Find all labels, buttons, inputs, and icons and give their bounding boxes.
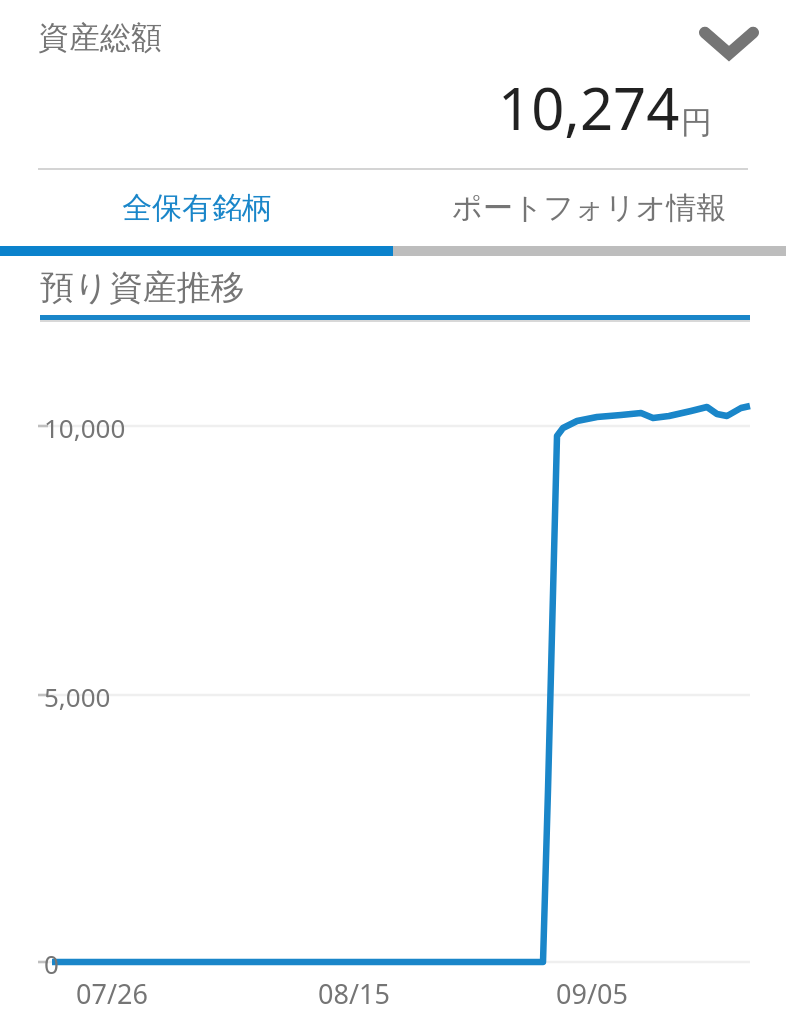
staticText: 10,000 — [44, 410, 126, 445]
staticText: 預り資産推移 — [40, 266, 245, 309]
staticText: ポートフォリオ情報 — [452, 189, 727, 227]
staticText: 08/15 — [318, 975, 390, 1012]
staticText: 07/26 — [76, 975, 148, 1012]
staticText: 資産総額 — [38, 18, 162, 57]
button[interactable]: 資産総額を展開 — [692, 6, 766, 78]
staticText: 0 — [44, 946, 59, 981]
staticText: 円 — [681, 103, 712, 142]
staticText: 09/05 — [556, 975, 628, 1012]
staticText: 10,274 — [498, 68, 680, 147]
staticText: 全保有銘柄 — [122, 189, 272, 227]
button[interactable]: ポートフォリオ情報 — [393, 170, 786, 246]
button[interactable]: 全保有銘柄 — [0, 170, 393, 246]
staticText: 5,000 — [44, 679, 111, 714]
